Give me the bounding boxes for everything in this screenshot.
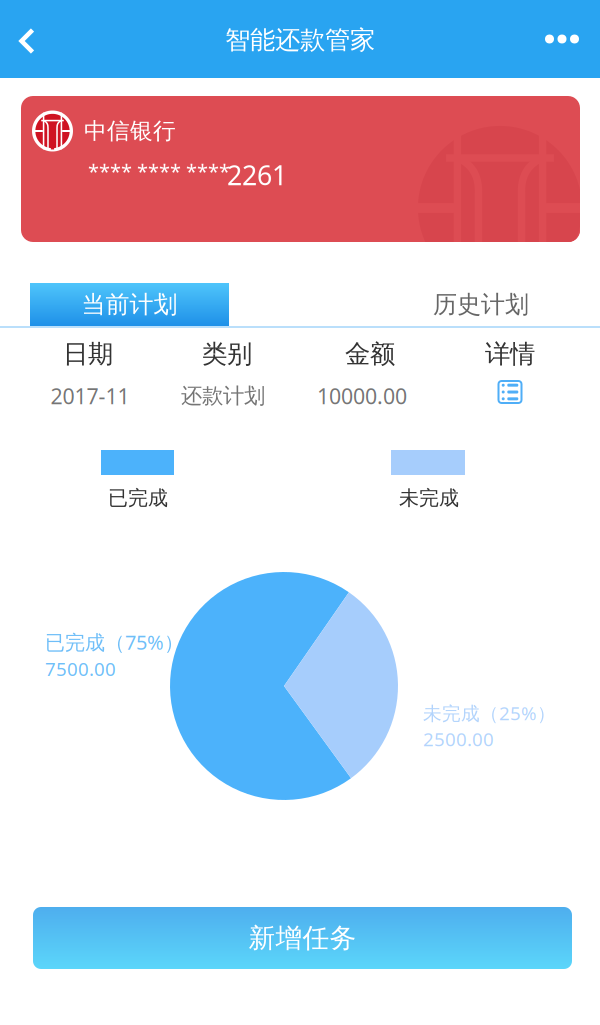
staticText: 未完成（25%） <box>423 701 556 725</box>
staticText: 当前计划 <box>81 290 177 319</box>
staticText: 已完成 <box>108 486 168 510</box>
button[interactable]: 更多 <box>524 0 600 78</box>
button[interactable]: 查看详情 <box>488 372 532 412</box>
button[interactable]: 返回 <box>0 2 58 80</box>
staticText: 金额 <box>345 338 395 369</box>
button[interactable]: 历史计划 <box>381 283 580 326</box>
staticText: 详情 <box>485 338 535 369</box>
staticText: 已完成（75%） <box>45 629 184 655</box>
button[interactable]: 新增任务 <box>33 907 572 969</box>
staticText: 还款计划 <box>181 383 265 409</box>
staticText: 10000.00 <box>317 382 407 410</box>
staticText: **** **** **** <box>88 158 230 184</box>
staticText: 智能还款管家 <box>225 24 375 55</box>
staticText: 7500.00 <box>45 656 116 681</box>
staticText: 2017-11 <box>50 382 129 410</box>
staticText: 中信银行 <box>84 117 176 145</box>
button[interactable]: 当前计划 <box>30 283 229 326</box>
staticText: 历史计划 <box>433 290 529 319</box>
staticText: 2500.00 <box>423 726 494 751</box>
staticText: 2261 <box>227 157 287 193</box>
staticText: 新增任务 <box>248 922 356 954</box>
staticText: 类别 <box>202 338 252 369</box>
staticText: 未完成 <box>399 486 459 510</box>
staticText: 日期 <box>63 338 113 369</box>
